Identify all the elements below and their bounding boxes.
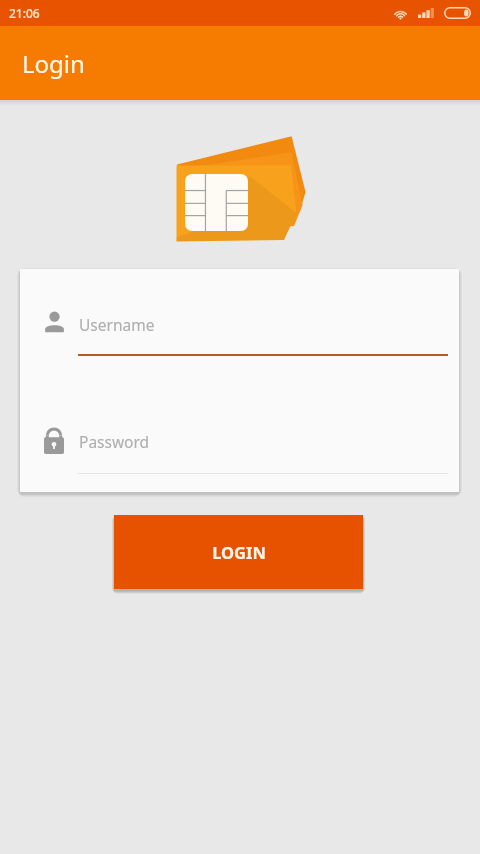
button[interactable]: Username — [20, 269, 459, 381]
staticText: LOGIN — [212, 541, 266, 563]
other: SIM card logo — [168, 130, 308, 250]
staticText: 21:06 — [9, 5, 40, 21]
button[interactable]: LOGIN — [114, 515, 363, 589]
staticText: Username — [79, 314, 155, 335]
staticText: Login — [22, 47, 85, 80]
button[interactable]: Password — [20, 381, 459, 492]
staticText: Password — [79, 431, 150, 452]
